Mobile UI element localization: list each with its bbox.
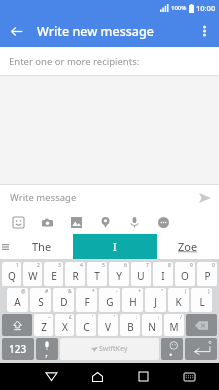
staticText: The [32, 239, 52, 254]
staticText: I [161, 269, 165, 283]
button[interactable]: Home [74, 363, 120, 390]
staticText: ; [158, 314, 160, 321]
button[interactable]: ~ [34, 314, 53, 336]
button[interactable]: 123 [2, 338, 34, 360]
staticText: Y [116, 269, 122, 283]
button[interactable]: 2 [23, 262, 42, 286]
button[interactable]: - [99, 288, 120, 312]
staticText: Write message [10, 191, 77, 204]
button[interactable]: More options [189, 16, 219, 46]
staticText: SwiftKey [99, 344, 128, 354]
staticText: 4 [80, 262, 83, 269]
button[interactable]: Comma and voice input [36, 338, 58, 360]
button[interactable]: Sticker [6, 210, 31, 234]
button[interactable]: 3 [44, 262, 63, 286]
staticText: 5 [102, 262, 105, 269]
staticText: 6 [124, 262, 127, 269]
button[interactable]: & [53, 288, 74, 312]
button[interactable]: Camera [35, 210, 60, 234]
staticText: Q [8, 269, 16, 283]
button[interactable]: : [120, 314, 140, 336]
button[interactable]: 9 [175, 262, 195, 286]
staticText: * [92, 288, 95, 295]
staticText: X [62, 320, 68, 334]
button[interactable]: # [30, 288, 51, 312]
button[interactable]: Back [0, 15, 32, 47]
staticText: H [129, 295, 137, 309]
staticText: Write new message [37, 23, 154, 40]
button[interactable]: Period and emoji [161, 338, 183, 360]
button[interactable]: Hide keyboard [166, 363, 212, 390]
staticText: I [113, 239, 117, 254]
button[interactable]: Shift [2, 314, 32, 336]
button[interactable]: / [164, 314, 184, 336]
button[interactable]: ; [142, 314, 162, 336]
staticText: + [138, 288, 141, 295]
staticText: 9 [190, 262, 193, 269]
staticText: J [154, 295, 157, 309]
button[interactable]: More [151, 210, 176, 234]
button[interactable]: @ [7, 288, 28, 312]
staticText: 123 [9, 342, 27, 356]
button[interactable]: 5 [87, 262, 107, 286]
button[interactable]: " [145, 288, 166, 312]
staticText: ( [185, 288, 187, 295]
staticText: 7 [146, 262, 149, 269]
staticText: ' [92, 314, 94, 321]
button[interactable]: 6 [109, 262, 129, 286]
button[interactable]: Voice [122, 210, 147, 234]
staticText: : [136, 314, 138, 321]
button[interactable]: ( [168, 288, 189, 312]
button[interactable]: Enter one or more recipients: [0, 47, 219, 75]
staticText: Z [41, 320, 47, 334]
button[interactable]: 8 [153, 262, 173, 286]
staticText: W [28, 269, 38, 283]
staticText: / [180, 314, 182, 321]
button[interactable]: Recent apps [120, 363, 166, 390]
staticText: ~ [48, 314, 51, 321]
button[interactable]: Keyboard menu [0, 234, 10, 259]
button[interactable]: ' [98, 314, 118, 336]
staticText: R [72, 269, 79, 283]
staticText: 2 [37, 262, 40, 269]
staticText: @ [21, 288, 26, 295]
button[interactable]: Gallery [64, 210, 89, 234]
button[interactable]: + [122, 288, 143, 312]
button[interactable]: 7 [131, 262, 151, 286]
button[interactable]: Backspace [186, 314, 217, 336]
button[interactable]: Enter [185, 338, 217, 360]
button[interactable]: I [73, 234, 157, 259]
staticText: U [137, 269, 145, 283]
staticText: T [94, 269, 100, 283]
staticText: 8 [168, 262, 171, 269]
staticText: D [60, 295, 68, 309]
staticText: Enter one or more recipients: [9, 55, 140, 68]
button[interactable]: ' [76, 314, 96, 336]
staticText: G [106, 295, 114, 309]
staticText: & [68, 288, 72, 295]
staticText: £ [69, 314, 72, 321]
button[interactable]: Back [28, 363, 74, 390]
button[interactable]: * [76, 288, 97, 312]
button[interactable]: Send [191, 185, 219, 210]
staticText: " [161, 288, 164, 295]
staticText: O [181, 269, 189, 283]
button[interactable]: Zoe [157, 234, 219, 259]
staticText: 0 [212, 262, 215, 269]
button[interactable]: Space [60, 338, 159, 360]
button[interactable]: £ [55, 314, 74, 336]
staticText: 100% [171, 4, 187, 12]
staticText: M [169, 320, 179, 334]
staticText: S [38, 295, 44, 309]
button[interactable]: 1 [2, 262, 21, 286]
button[interactable]: The [10, 234, 73, 259]
staticText: P [204, 269, 211, 283]
staticText: L [199, 295, 205, 309]
button[interactable]: Location [93, 210, 118, 234]
button[interactable]: 0 [197, 262, 217, 286]
button[interactable]: 4 [65, 262, 85, 286]
staticText: A [14, 295, 21, 309]
button[interactable]: Write message [0, 185, 191, 210]
staticText: Zoe [178, 239, 198, 254]
button[interactable]: ) [191, 288, 212, 312]
